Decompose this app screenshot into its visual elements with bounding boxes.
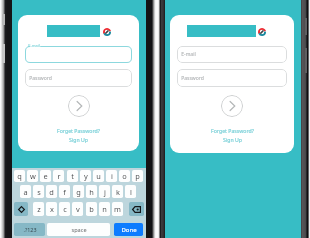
button[interactable]: w bbox=[27, 170, 38, 182]
button[interactable]: Backspace bbox=[129, 202, 144, 216]
staticText: d bbox=[49, 187, 54, 197]
button[interactable]: Next bbox=[68, 95, 90, 117]
button[interactable]: Sign Up bbox=[170, 135, 294, 143]
button[interactable]: a bbox=[20, 185, 31, 198]
button[interactable]: Shift bbox=[14, 202, 28, 216]
staticText: h bbox=[89, 187, 94, 197]
staticText: n bbox=[102, 204, 107, 214]
button[interactable]: x bbox=[46, 202, 57, 216]
button[interactable]: y bbox=[80, 170, 91, 182]
button[interactable]: Password bbox=[25, 69, 132, 87]
staticText: z bbox=[37, 204, 41, 214]
staticText: space bbox=[71, 226, 87, 234]
staticText: b bbox=[89, 204, 94, 214]
button[interactable]: space bbox=[47, 223, 110, 236]
staticText: g bbox=[76, 187, 81, 197]
staticText: t bbox=[71, 171, 74, 181]
button[interactable]: Forget Password? bbox=[18, 126, 139, 134]
staticText: p bbox=[135, 171, 140, 181]
button[interactable]: Next bbox=[221, 95, 243, 117]
staticText: r bbox=[57, 171, 61, 181]
button[interactable]: j bbox=[99, 185, 110, 198]
button[interactable]: m bbox=[112, 202, 123, 216]
button[interactable]: k bbox=[112, 185, 123, 198]
staticText: Password bbox=[29, 75, 52, 82]
button[interactable]: Done bbox=[114, 223, 143, 236]
staticText: .?123 bbox=[23, 226, 37, 233]
button[interactable]: g bbox=[73, 185, 84, 198]
button[interactable]: r bbox=[53, 170, 64, 182]
button[interactable]: l bbox=[125, 185, 136, 198]
button[interactable]: s bbox=[33, 185, 44, 198]
staticText: j bbox=[104, 187, 106, 197]
staticText: w bbox=[30, 171, 36, 181]
button[interactable]: t bbox=[67, 170, 78, 182]
staticText: E-mail bbox=[28, 43, 40, 48]
button[interactable]: n bbox=[99, 202, 110, 216]
staticText: Forget Password? bbox=[211, 127, 254, 134]
staticText: Forget Password? bbox=[57, 127, 100, 134]
button[interactable]: i bbox=[106, 170, 117, 182]
staticText: s bbox=[37, 187, 41, 197]
staticText: l bbox=[130, 187, 132, 197]
staticText: o bbox=[122, 171, 127, 181]
button[interactable]: h bbox=[86, 185, 97, 198]
staticText: Sign Up bbox=[69, 136, 88, 143]
staticText: E-mail bbox=[181, 51, 196, 58]
staticText: k bbox=[116, 187, 120, 197]
staticText: v bbox=[76, 204, 80, 214]
button[interactable]: Password bbox=[177, 69, 287, 87]
button[interactable]: z bbox=[33, 202, 44, 216]
button[interactable]: f bbox=[59, 185, 70, 198]
button[interactable]: b bbox=[86, 202, 97, 216]
button[interactable]: E-mail bbox=[177, 46, 287, 63]
staticText: a bbox=[23, 187, 28, 197]
button[interactable]: Forget Password? bbox=[170, 126, 294, 134]
button[interactable]: u bbox=[93, 170, 104, 182]
button[interactable]: E-mail bbox=[25, 46, 132, 63]
staticText: c bbox=[63, 204, 67, 214]
staticText: u bbox=[96, 171, 101, 181]
staticText: Sign Up bbox=[223, 136, 242, 143]
staticText: i bbox=[111, 171, 113, 181]
staticText: Password bbox=[181, 75, 204, 82]
staticText: x bbox=[50, 204, 54, 214]
button[interactable]: .?123 bbox=[14, 223, 45, 236]
staticText: m bbox=[114, 204, 121, 214]
button[interactable]: p bbox=[132, 170, 143, 182]
staticText: Done bbox=[121, 226, 137, 234]
staticText: y bbox=[84, 171, 88, 181]
staticText: q bbox=[17, 171, 22, 181]
button[interactable]: q bbox=[14, 170, 25, 182]
button[interactable]: Sign Up bbox=[18, 135, 139, 143]
button[interactable]: v bbox=[72, 202, 83, 216]
staticText: e bbox=[43, 171, 48, 181]
button[interactable]: o bbox=[119, 170, 130, 182]
staticText: f bbox=[63, 187, 66, 197]
button[interactable]: c bbox=[59, 202, 70, 216]
button[interactable]: d bbox=[46, 185, 57, 198]
button[interactable]: e bbox=[40, 170, 51, 182]
